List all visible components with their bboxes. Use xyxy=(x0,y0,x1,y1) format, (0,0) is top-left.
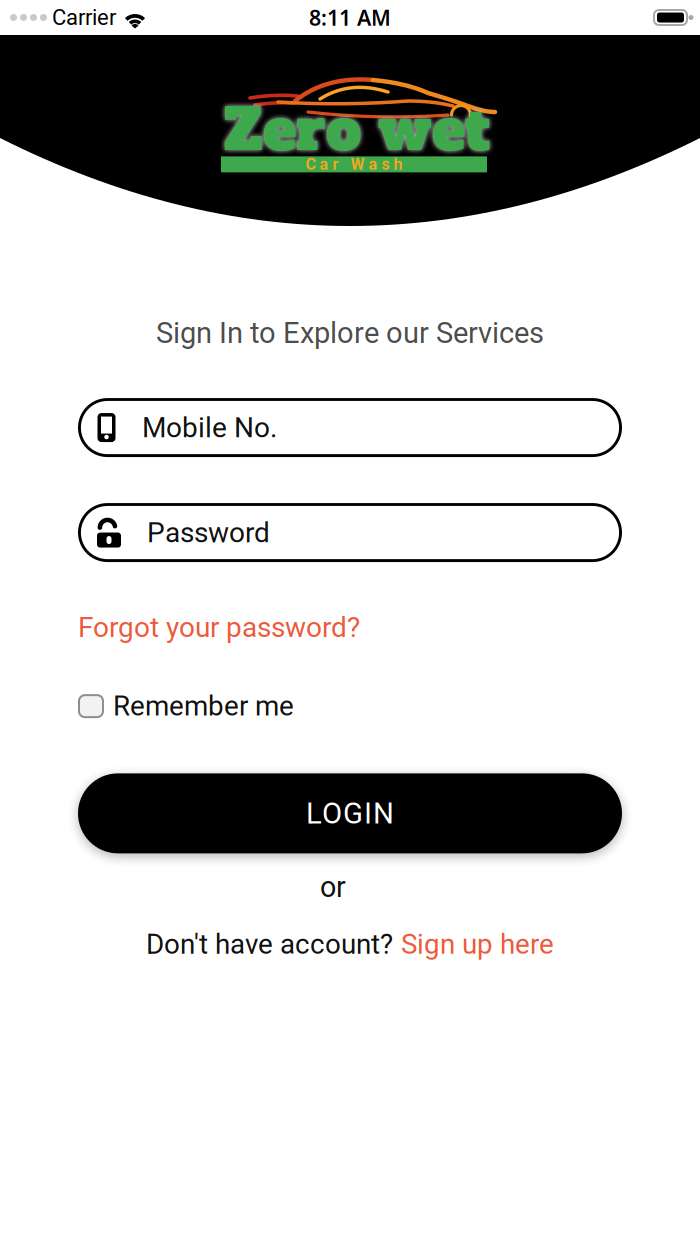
staticText: Forgot your password? xyxy=(78,611,360,644)
staticText: Remember me xyxy=(113,690,294,722)
staticText: Sign up here xyxy=(401,928,554,960)
staticText: Password xyxy=(147,516,270,549)
staticText: Zero wet xyxy=(224,92,490,169)
staticText: Sign In to Explore our Services xyxy=(156,316,544,350)
staticText: or xyxy=(320,870,346,904)
staticText: 8:11 AM xyxy=(309,3,391,32)
staticText: LOGIN xyxy=(306,796,394,831)
staticText: Mobile No. xyxy=(142,411,277,444)
staticText: Carrier xyxy=(52,5,116,30)
staticText: Car Wash xyxy=(305,155,402,174)
staticText: Don't have account? xyxy=(146,928,393,960)
